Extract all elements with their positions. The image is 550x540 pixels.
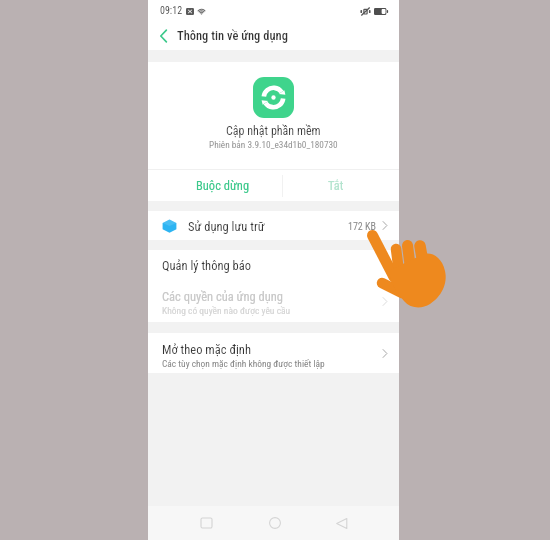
staticText: Cập nhật phần mềm (226, 124, 321, 138)
staticText: Mở theo mặc định (162, 342, 251, 357)
button[interactable]: Buộc dừng (148, 170, 282, 201)
staticText: Tắt (328, 178, 344, 193)
staticText: Phiên bản 3.9.10_e34d1b0_180730 (209, 139, 338, 150)
button[interactable]: Quản lý thông báo (148, 250, 399, 281)
button[interactable]: Recent apps (191, 510, 222, 536)
button[interactable]: Tắt (282, 170, 399, 201)
staticText: Các tùy chọn mặc định không được thiết l… (162, 358, 325, 369)
staticText: Quản lý thông báo (162, 258, 251, 273)
staticText: Buộc dừng (196, 178, 250, 193)
staticText: Sử dụng lưu trữ (188, 219, 265, 234)
staticText: Thông tin về ứng dụng (177, 28, 288, 43)
staticText: Không có quyền nào được yêu cầu (162, 305, 291, 316)
button[interactable]: Mở theo mặc định (148, 333, 399, 373)
staticText: 172 KB (348, 221, 377, 233)
button[interactable]: Các quyền của ứng dụng (148, 281, 399, 322)
button[interactable]: Back (148, 22, 178, 50)
button[interactable]: Sử dụng lưu trữ (148, 211, 399, 240)
staticText: Các quyền của ứng dụng (162, 289, 284, 304)
button[interactable]: Back (326, 510, 357, 536)
staticText: 09:12 (160, 5, 183, 17)
button[interactable]: Home (259, 510, 290, 536)
